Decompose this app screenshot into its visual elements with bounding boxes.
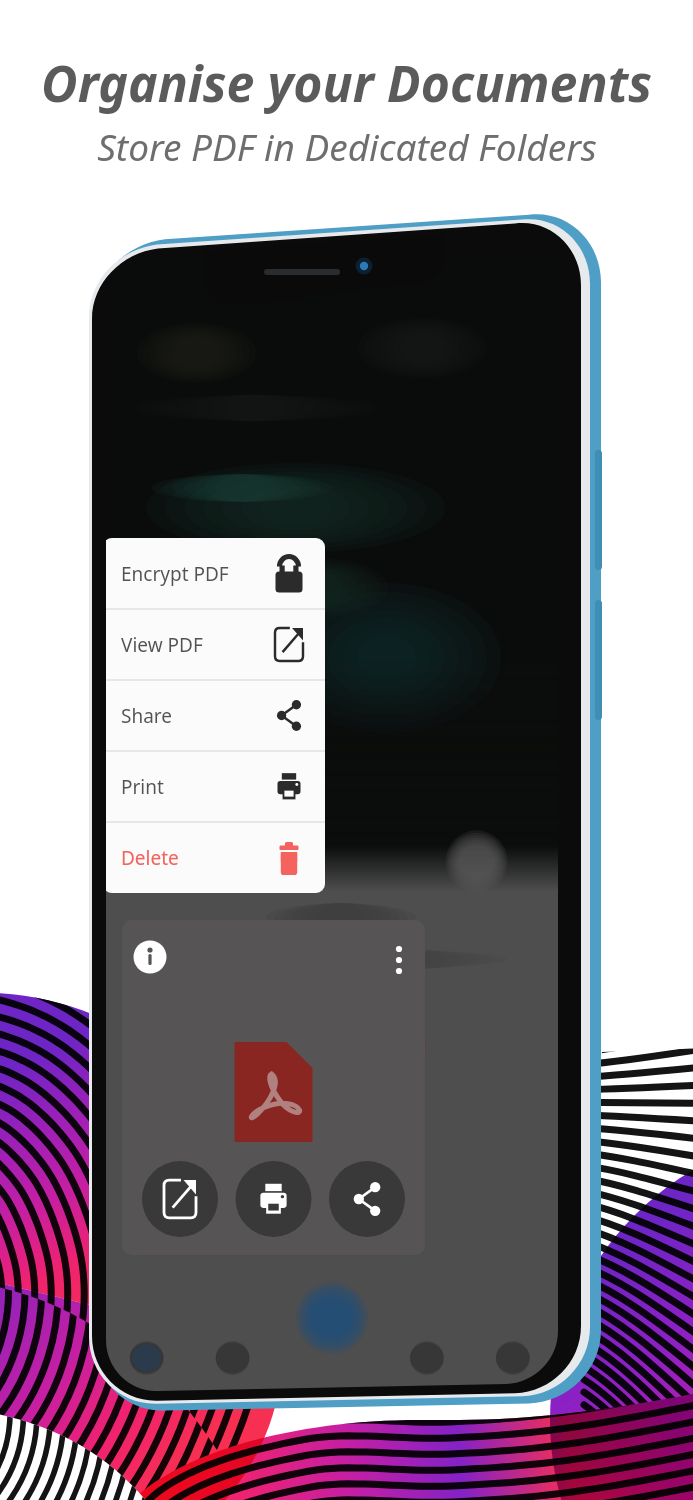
button[interactable]: Encrypt PDF xyxy=(121,538,325,609)
staticText: Encrypt PDF xyxy=(121,561,229,587)
button[interactable]: Print xyxy=(121,751,325,822)
staticText: Store PDF in Dedicated Folders xyxy=(97,121,597,171)
button[interactable]: Delete xyxy=(121,822,325,893)
staticText: Share xyxy=(121,703,173,729)
button[interactable]: Share xyxy=(121,680,325,751)
button[interactable]: View PDF xyxy=(121,609,325,680)
staticText: Delete xyxy=(121,845,179,871)
staticText: View PDF xyxy=(121,632,203,658)
staticText: Print xyxy=(121,774,164,800)
staticText: Organise your Documents xyxy=(41,49,652,117)
